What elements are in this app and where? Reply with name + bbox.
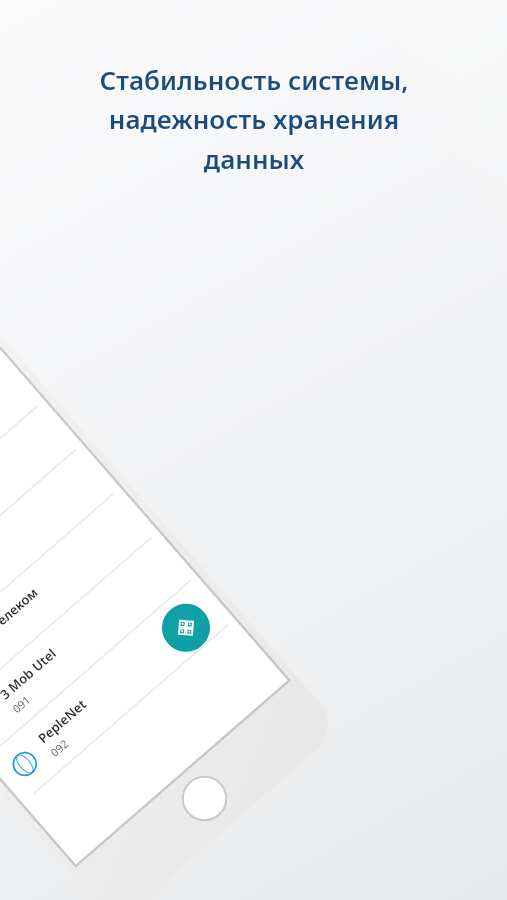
button[interactable]: Lifecell [0, 445, 121, 672]
button[interactable]: Add operator [152, 594, 220, 662]
staticText: 3 Mob Utel [0, 644, 60, 703]
button[interactable]: Интертелеком [0, 488, 159, 716]
button[interactable]: Киевстар [0, 357, 44, 585]
button[interactable]: 3 Mob Utel [0, 532, 197, 760]
staticText: 092 [47, 736, 71, 760]
button[interactable]: Home [172, 766, 237, 831]
staticText: PepleNet [34, 695, 90, 747]
button[interactable]: Vodafone [0, 401, 83, 628]
staticText: 091 [9, 692, 33, 716]
button[interactable]: PepleNet [0, 576, 235, 804]
staticText: Стабильность системы, надежность хранени… [99, 62, 409, 177]
staticText: Интертелеком [0, 583, 41, 659]
